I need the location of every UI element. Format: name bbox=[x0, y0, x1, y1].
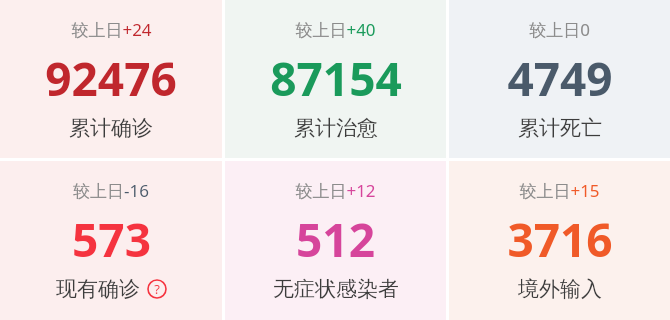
staticText: 92476 bbox=[45, 47, 177, 110]
button[interactable]: Help about 现有确诊 bbox=[147, 279, 167, 299]
staticText: 较上日+15 bbox=[519, 179, 600, 202]
staticText: 较上日-16 bbox=[73, 179, 149, 202]
staticText: 较上日+24 bbox=[71, 18, 152, 41]
staticText: 累计死亡 bbox=[518, 115, 602, 141]
staticText: 现有确诊 bbox=[56, 276, 140, 302]
button[interactable]: 较上日0 bbox=[449, 0, 670, 158]
button[interactable]: 较上日+15 bbox=[449, 161, 670, 320]
staticText: 累计治愈 bbox=[294, 115, 378, 141]
button[interactable]: 较上日-16 bbox=[0, 161, 222, 320]
staticText: 3716 bbox=[507, 208, 613, 271]
button[interactable]: 较上日+12 bbox=[225, 161, 446, 320]
staticText: 87154 bbox=[270, 47, 402, 110]
staticText: 境外输入 bbox=[518, 276, 602, 302]
staticText: 较上日+40 bbox=[295, 18, 376, 41]
button[interactable]: 较上日+40 bbox=[225, 0, 446, 158]
staticText: 4749 bbox=[507, 47, 613, 110]
staticText: 累计确诊 bbox=[69, 115, 153, 141]
button[interactable]: 较上日+24 bbox=[0, 0, 222, 158]
staticText: 573 bbox=[72, 208, 151, 271]
staticText: 无症状感染者 bbox=[273, 276, 399, 302]
staticText: ? bbox=[154, 280, 160, 298]
staticText: 较上日+12 bbox=[295, 179, 376, 202]
staticText: 较上日0 bbox=[529, 18, 590, 41]
staticText: 512 bbox=[296, 208, 375, 271]
